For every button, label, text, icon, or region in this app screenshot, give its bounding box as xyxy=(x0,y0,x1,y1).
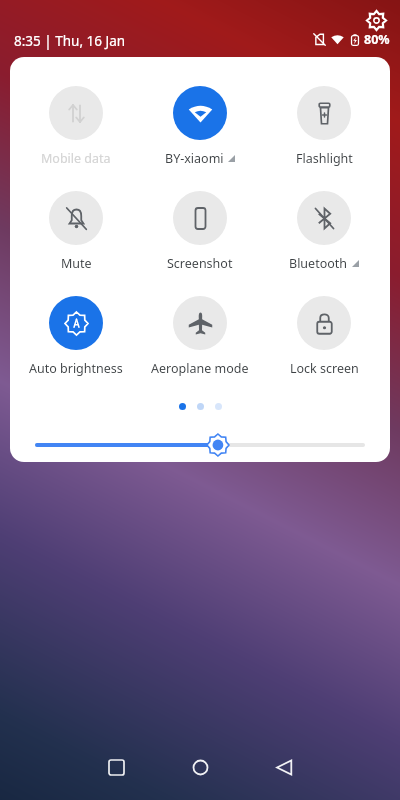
button[interactable]: Settings xyxy=(363,7,389,33)
button[interactable]: Bluetooth xyxy=(266,191,382,272)
staticText: 80% xyxy=(364,31,390,48)
button[interactable]: Home xyxy=(172,742,228,792)
staticText: Aeroplane mode xyxy=(151,360,249,377)
button[interactable]: BY-xiaomi xyxy=(142,86,258,167)
button[interactable]: Aeroplane mode xyxy=(142,296,258,377)
staticText: Auto brightness xyxy=(29,360,123,377)
button[interactable]: Back xyxy=(256,742,312,792)
button[interactable]: Lock screen xyxy=(266,296,382,377)
button[interactable]: Recents xyxy=(88,742,144,792)
staticText: 8:35 | Thu, 16 Jan xyxy=(14,32,126,50)
staticText: BY-xiaomi xyxy=(165,150,224,167)
button[interactable]: Screenshot xyxy=(142,191,258,272)
staticText: Mute xyxy=(61,255,92,272)
staticText: Mobile data xyxy=(41,150,111,167)
staticText: Flashlight xyxy=(296,150,353,167)
button[interactable]: Flashlight xyxy=(266,86,382,167)
button[interactable] xyxy=(37,428,363,462)
button[interactable]: Mute xyxy=(18,191,134,272)
staticText: Lock screen xyxy=(290,360,359,377)
button[interactable]: Auto brightness xyxy=(18,296,134,377)
staticText: Screenshot xyxy=(167,255,233,272)
button[interactable]: Mobile data xyxy=(18,86,134,167)
staticText: Bluetooth xyxy=(289,255,348,272)
